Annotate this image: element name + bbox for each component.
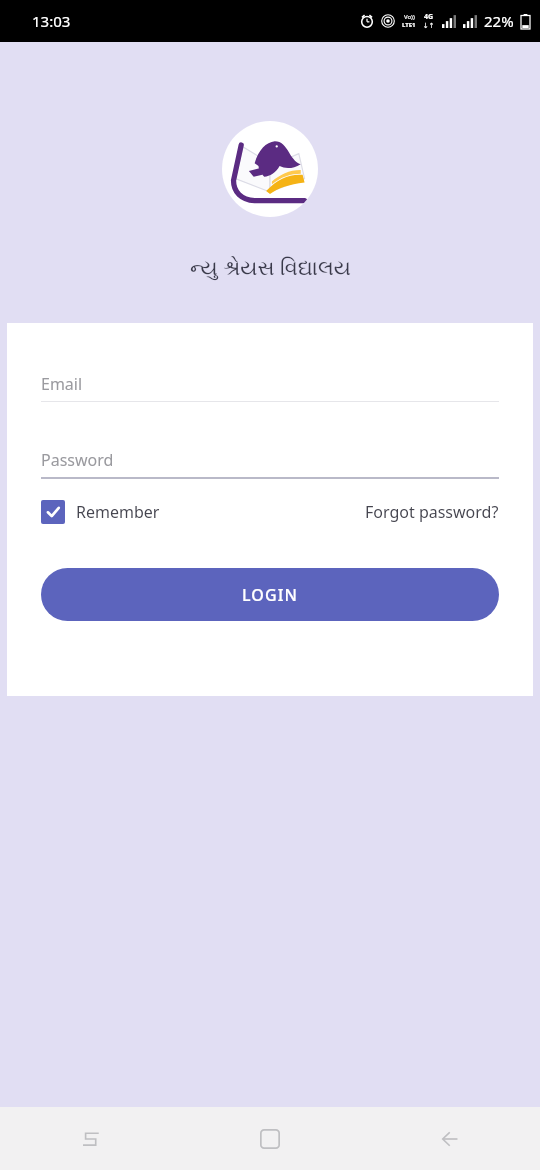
- staticText: Remember: [76, 501, 160, 523]
- staticText: Password: [41, 449, 114, 471]
- staticText: ↓↑: [423, 22, 435, 30]
- staticText: 22%: [484, 11, 514, 31]
- button[interactable]: Remember: [41, 500, 160, 524]
- staticText: 13:03: [32, 11, 71, 31]
- staticText: LOGIN: [242, 584, 298, 606]
- button[interactable]: LOGIN: [41, 568, 499, 621]
- button[interactable]: Email: [41, 366, 499, 401]
- button[interactable]: Password: [41, 442, 499, 477]
- button[interactable]: Recents: [0, 1107, 180, 1170]
- button[interactable]: Forgot password?: [365, 501, 499, 523]
- button[interactable]: Back: [360, 1107, 540, 1170]
- staticText: LTE1: [402, 21, 416, 29]
- staticText: Vo)): [404, 13, 415, 21]
- staticText: 4G: [424, 12, 434, 22]
- button[interactable]: Home: [180, 1107, 360, 1170]
- staticText: ન્યુ શ્રેયસ વિદ્યાલય: [190, 253, 351, 282]
- staticText: Forgot password?: [365, 501, 499, 523]
- staticText: Email: [41, 373, 83, 395]
